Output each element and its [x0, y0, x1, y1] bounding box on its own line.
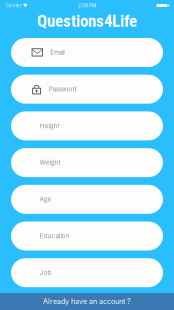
button[interactable]: Email	[11, 38, 163, 67]
button[interactable]: Age	[11, 185, 163, 214]
staticText: Email	[50, 49, 64, 56]
staticText: Height	[40, 122, 60, 130]
button[interactable]: Education	[11, 221, 163, 250]
staticText: Job	[40, 269, 52, 276]
button[interactable]: Height	[11, 111, 163, 140]
button[interactable]: Password	[11, 75, 163, 104]
staticText: Age	[40, 196, 52, 203]
staticText: Carrier	[5, 3, 21, 8]
button[interactable]: Already have an account ?	[0, 293, 174, 310]
button[interactable]: Weight	[11, 148, 163, 177]
button[interactable]: Job	[11, 258, 163, 287]
staticText: Already have an account ?	[43, 297, 131, 306]
staticText: Questions4Life	[37, 11, 137, 31]
staticText: Education	[40, 232, 70, 240]
staticText: 2:28 PM	[78, 3, 96, 8]
staticText: Password	[49, 85, 77, 93]
staticText: Weight	[40, 159, 61, 166]
